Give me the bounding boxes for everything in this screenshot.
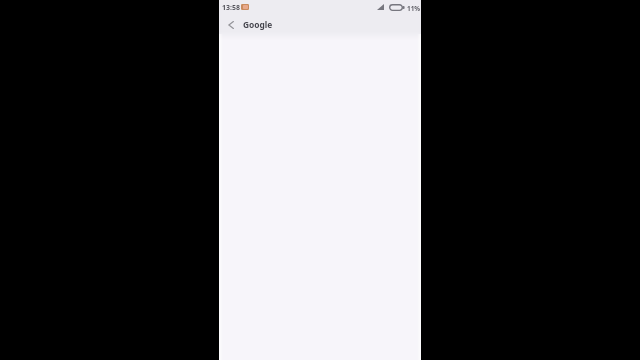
button[interactable]: Back xyxy=(221,15,241,35)
staticText: 13:58 xyxy=(222,3,240,13)
staticText: Google xyxy=(243,19,273,30)
staticText: 11% xyxy=(407,4,421,13)
